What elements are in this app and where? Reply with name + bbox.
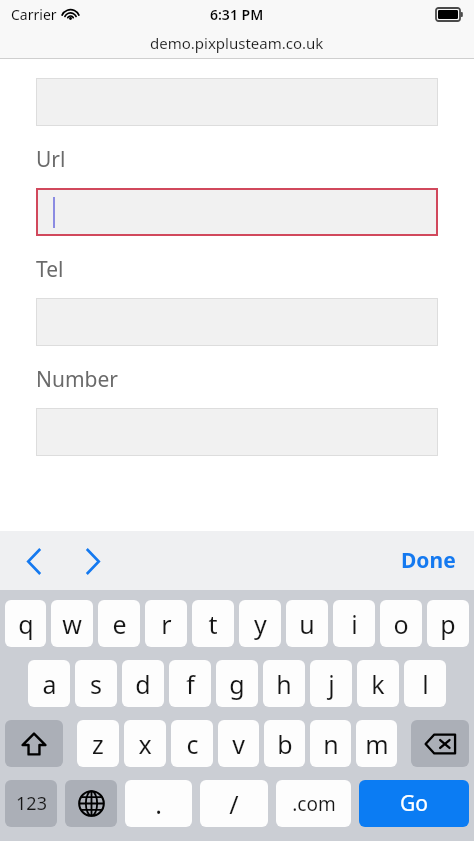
staticText: c	[186, 727, 199, 761]
staticText: o	[393, 607, 409, 641]
button[interactable]: f	[169, 660, 211, 707]
staticText: k	[371, 667, 385, 701]
staticText: p	[440, 607, 456, 641]
button[interactable]: s	[75, 660, 117, 707]
staticText: r	[161, 607, 172, 641]
button[interactable]: r	[145, 600, 187, 647]
staticText: 123	[16, 791, 47, 816]
staticText: 6:31 PM	[210, 5, 264, 24]
staticText: m	[365, 727, 389, 761]
button[interactable]: .	[125, 780, 192, 827]
button[interactable]: u	[286, 600, 328, 647]
button[interactable]: l	[404, 660, 446, 707]
button[interactable]	[36, 298, 438, 346]
staticText: f	[186, 667, 195, 701]
button[interactable]: o	[380, 600, 422, 647]
button[interactable]: n	[310, 720, 351, 767]
button[interactable]: e	[98, 600, 140, 647]
button[interactable]: h	[263, 660, 305, 707]
button[interactable]: q	[5, 600, 46, 647]
staticText: e	[112, 607, 127, 641]
staticText: x	[138, 727, 152, 761]
staticText: Tel	[36, 255, 64, 284]
button[interactable]: Go	[359, 780, 469, 827]
staticText: q	[18, 607, 34, 641]
button[interactable]: Next field	[70, 539, 114, 583]
staticText: j	[328, 667, 335, 701]
button[interactable]: d	[122, 660, 164, 707]
button[interactable]: 123	[5, 780, 57, 827]
staticText: v	[232, 727, 245, 761]
staticText: t	[208, 607, 218, 641]
button[interactable]: Change keyboard	[65, 780, 117, 827]
staticText: a	[42, 667, 57, 701]
button[interactable]: i	[333, 600, 375, 647]
staticText: n	[323, 727, 339, 761]
button[interactable]: t	[192, 600, 234, 647]
staticText: s	[90, 667, 102, 701]
staticText: u	[299, 607, 315, 641]
button[interactable]: x	[124, 720, 166, 767]
button[interactable]: a	[28, 660, 70, 707]
button[interactable]: c	[171, 720, 213, 767]
staticText: .	[155, 787, 162, 821]
staticText: .com	[292, 791, 336, 817]
staticText: b	[277, 727, 293, 761]
button[interactable]: j	[310, 660, 352, 707]
button[interactable]: g	[216, 660, 258, 707]
button[interactable]	[36, 408, 438, 456]
button[interactable]	[36, 188, 438, 236]
staticText: demo.pixplusteam.co.uk	[150, 33, 324, 53]
staticText: Go	[400, 789, 428, 818]
button[interactable]: Shift	[5, 720, 63, 767]
button[interactable]: k	[357, 660, 399, 707]
staticText: l	[422, 667, 429, 701]
button[interactable]: Done	[397, 538, 460, 583]
button[interactable]: z	[77, 720, 119, 767]
staticText: g	[229, 667, 245, 701]
staticText: d	[135, 667, 151, 701]
staticText: z	[92, 727, 104, 761]
staticText: Carrier	[11, 5, 57, 24]
button[interactable]: /	[200, 780, 268, 827]
staticText: i	[351, 607, 358, 641]
staticText: /	[229, 787, 239, 821]
staticText: Number	[36, 365, 119, 394]
button[interactable]	[36, 78, 438, 126]
staticText: h	[276, 667, 292, 701]
button[interactable]: y	[239, 600, 281, 647]
button[interactable]: w	[51, 600, 93, 647]
staticText: Done	[401, 546, 456, 575]
button[interactable]: v	[218, 720, 259, 767]
staticText: Url	[36, 145, 66, 174]
button[interactable]: demo.pixplusteam.co.uk	[0, 28, 474, 58]
staticText: y	[254, 607, 267, 641]
button[interactable]: b	[264, 720, 305, 767]
staticText: w	[62, 607, 82, 641]
button[interactable]: Previous field	[12, 539, 56, 583]
button[interactable]: p	[427, 600, 469, 647]
button[interactable]: Backspace	[411, 720, 469, 767]
button[interactable]: .com	[276, 780, 351, 827]
button[interactable]: m	[356, 720, 397, 767]
